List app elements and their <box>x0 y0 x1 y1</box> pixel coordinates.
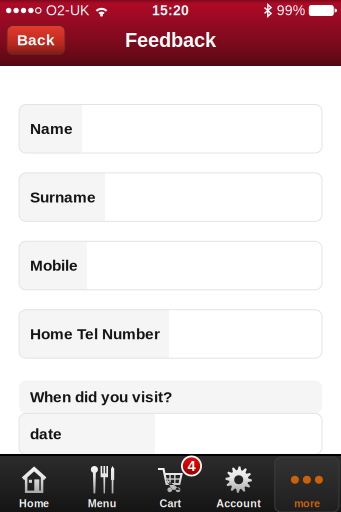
button[interactable]: Name <box>19 104 322 153</box>
button[interactable]: date <box>19 413 322 454</box>
staticText: Mobile <box>30 257 78 274</box>
staticText: Account <box>216 497 261 509</box>
staticText: 4 <box>187 458 195 474</box>
button[interactable]: Account <box>205 454 273 512</box>
staticText: Home <box>19 497 49 509</box>
staticText: date <box>30 425 62 442</box>
staticText: 15:20 <box>152 3 189 18</box>
button[interactable]: Surname <box>19 173 322 221</box>
staticText: Home Tel Number <box>30 325 160 342</box>
button[interactable]: more <box>273 454 341 512</box>
button[interactable]: Back <box>7 25 65 54</box>
button[interactable]: Home Tel Number <box>19 310 322 358</box>
button[interactable]: Home <box>0 454 68 512</box>
staticText: When did you visit? <box>30 388 172 405</box>
button[interactable]: Cart <box>136 454 205 512</box>
button[interactable]: Menu <box>68 454 136 512</box>
staticText: Back <box>17 31 55 48</box>
staticText: more <box>294 497 320 509</box>
staticText: Feedback <box>125 29 216 51</box>
staticText: Menu <box>88 497 117 509</box>
button[interactable]: Mobile <box>19 241 322 290</box>
staticText: Name <box>30 120 73 137</box>
staticText: 99% <box>277 3 305 18</box>
staticText: Surname <box>30 189 96 206</box>
staticText: Cart <box>159 497 181 509</box>
staticText: O2-UK <box>46 3 89 18</box>
